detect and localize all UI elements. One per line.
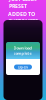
staticText: Download complete — [13, 45, 32, 56]
staticText: Open — [17, 64, 28, 70]
button[interactable]: Open — [14, 64, 32, 69]
staticText: ADDED TO CUSTOMIZE — [8, 10, 38, 25]
staticText: JUST CLICK PRESET — [9, 0, 37, 9]
